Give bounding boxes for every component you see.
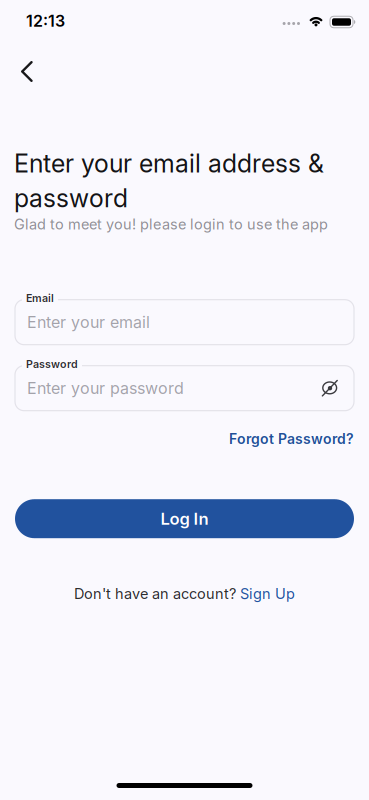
staticText: Forgot Password? bbox=[229, 431, 354, 447]
staticText: Enter your password bbox=[27, 379, 184, 398]
staticText: Log In bbox=[160, 509, 208, 528]
staticText: Email bbox=[26, 292, 54, 304]
button[interactable]: Back bbox=[0, 61, 45, 82]
button[interactable]: Show password bbox=[321, 380, 339, 397]
staticText: Sign Up bbox=[240, 585, 295, 602]
button[interactable]: Log In bbox=[15, 499, 354, 538]
staticText: Don't have an account? bbox=[74, 585, 236, 602]
button[interactable]: Sign Up bbox=[240, 585, 295, 602]
staticText: 12:13 bbox=[26, 12, 65, 30]
staticText: Glad to meet you! please login to use th… bbox=[14, 216, 328, 233]
staticText: Enter your email address & password bbox=[14, 146, 324, 216]
button[interactable]: Forgot Password? bbox=[229, 431, 354, 447]
staticText: Enter your email bbox=[27, 313, 150, 332]
staticText: Password bbox=[26, 358, 78, 370]
